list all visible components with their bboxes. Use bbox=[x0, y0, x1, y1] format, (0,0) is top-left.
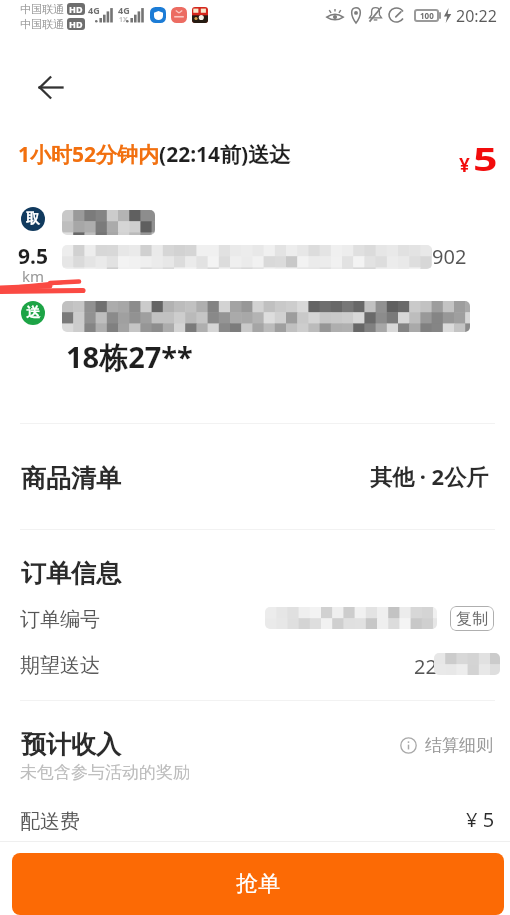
staticText: 送 bbox=[26, 304, 40, 322]
staticText: 1X bbox=[119, 15, 128, 25]
staticText: 22 bbox=[414, 653, 437, 680]
staticText: 复制 bbox=[456, 609, 488, 629]
button[interactable]: 抢单 bbox=[12, 853, 504, 915]
staticText: 1小时52分钟内(22:14前)送达 bbox=[18, 140, 291, 169]
button[interactable]: 订单编号 bbox=[0, 598, 510, 640]
button[interactable]: Back bbox=[30, 67, 71, 108]
button[interactable]: 期望送达 bbox=[0, 645, 510, 685]
staticText: 预计收入 bbox=[21, 729, 121, 760]
staticText: 4G bbox=[88, 4, 100, 16]
staticText: 4G bbox=[118, 4, 130, 16]
staticText: HD bbox=[69, 18, 83, 30]
staticText: ¥ 5 bbox=[466, 806, 495, 833]
staticText: 配送费 bbox=[20, 809, 80, 834]
staticText: 20:22 bbox=[456, 5, 497, 27]
staticText: 902 bbox=[432, 243, 467, 270]
button[interactable]: 配送费 bbox=[0, 802, 510, 838]
staticText: 结算细则 bbox=[425, 735, 493, 756]
button[interactable]: 复制 bbox=[450, 606, 494, 631]
staticText: 其他 · 2公斤 bbox=[370, 461, 489, 491]
staticText: 取 bbox=[26, 210, 40, 228]
staticText: 抢单 bbox=[236, 870, 280, 898]
staticText: 5 bbox=[473, 136, 498, 181]
staticText: 100 bbox=[420, 10, 434, 21]
staticText: 9.5 bbox=[18, 242, 48, 271]
staticText: 中国联通 bbox=[20, 2, 64, 16]
staticText: 18栋27** bbox=[66, 337, 193, 377]
staticText: 期望送达 bbox=[20, 653, 100, 678]
staticText: 订单信息 bbox=[21, 558, 121, 589]
staticText: HD bbox=[69, 3, 83, 15]
staticText: 商品清单 bbox=[21, 463, 121, 494]
staticText: ¥ bbox=[459, 152, 470, 178]
staticText: 未包含参与活动的奖励 bbox=[20, 762, 190, 783]
staticText: 中国联通 bbox=[20, 17, 64, 31]
button[interactable]: 结算细则 bbox=[400, 735, 493, 756]
staticText: km bbox=[22, 266, 45, 286]
staticText: 订单编号 bbox=[20, 607, 100, 632]
button[interactable]: 商品清单 bbox=[0, 424, 510, 529]
